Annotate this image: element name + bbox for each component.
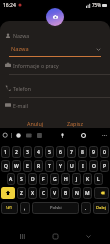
staticText: M [85,190,90,197]
staticText: K [86,176,90,183]
button[interactable] [94,187,109,199]
button[interactable]: Y [56,160,65,172]
button[interactable]: Zapisz [62,118,88,129]
button[interactable]: Settings [80,132,87,139]
staticText: 5 [48,149,51,156]
button[interactable]: Home [49,230,61,242]
button[interactable]: C [39,187,48,199]
button[interactable]: N [72,187,81,199]
button[interactable]: D [28,173,37,185]
button[interactable]: 4 [34,146,43,158]
button[interactable]: T [45,160,54,172]
button[interactable]: Dalej [93,202,109,214]
staticText: 9 [92,149,95,156]
button[interactable]: Add photo [46,8,64,26]
staticText: E-mail [13,102,28,109]
staticText: T [48,163,51,170]
button[interactable] [1,187,15,199]
staticText: L [97,176,100,183]
button[interactable]: K [83,173,92,185]
button[interactable]: R [34,160,43,172]
staticText: 6 [59,149,62,156]
button[interactable]: , [20,202,30,214]
button[interactable]: G [50,173,59,185]
button[interactable]: !#1 [1,202,18,214]
staticText: R [37,163,41,170]
button[interactable]: Voice input [59,132,66,139]
button[interactable]: W [12,160,21,172]
button[interactable]: F [39,173,48,185]
staticText: G [53,176,57,183]
button[interactable]: 0 [100,146,109,158]
staticText: Anuluj [27,120,44,127]
button[interactable]: X [28,187,37,199]
staticText: 7 [70,149,73,156]
staticText: Zapisz [67,120,83,127]
staticText: 16:24 [3,2,16,9]
staticText: U [70,163,74,170]
button[interactable]: Telefon [0,82,110,94]
button[interactable]: 6 [56,146,65,158]
staticText: Y [59,163,62,170]
staticText: Q [4,163,8,170]
button[interactable]: S [17,173,26,185]
staticText: Polski [50,205,62,211]
button[interactable]: Z [17,187,26,199]
staticText: 75% [92,2,101,8]
button[interactable]: 3 [23,146,32,158]
staticText: W [14,163,19,170]
button[interactable]: 5 [45,146,54,158]
staticText: B [64,190,68,197]
staticText: C [42,190,46,197]
button[interactable]: B [61,187,70,199]
staticText: I [82,163,84,170]
staticText: S [20,176,23,183]
button[interactable]: Clipboard [37,132,44,139]
staticText: 8 [81,149,84,156]
button[interactable]: 1 [1,146,10,158]
staticText: Nazwa [11,45,29,53]
button[interactable]: Back [82,230,94,242]
button[interactable]: E [23,160,32,172]
button[interactable]: 2 [12,146,21,158]
button[interactable]: 7 [67,146,76,158]
button[interactable]: Recents [16,230,28,242]
button[interactable]: 8 [78,146,87,158]
button[interactable]: O [89,160,98,172]
staticText: J [76,176,78,183]
button[interactable]: P [100,160,109,172]
button[interactable]: A [7,173,15,185]
staticText: 0 [103,149,106,156]
button[interactable]: 9 [89,146,98,158]
button[interactable]: Q [1,160,10,172]
button[interactable]: H [61,173,70,185]
button[interactable]: J [72,173,81,185]
button[interactable]: L [94,173,103,185]
staticText: Informacje o pracy [13,62,59,69]
staticText: !#1 [6,205,13,211]
button[interactable]: Informacje o pracy [0,59,110,71]
button[interactable]: I [78,160,87,172]
staticText: D [31,176,35,183]
staticText: Z [20,190,23,197]
button[interactable]: More options [101,132,108,139]
staticText: N [75,190,79,197]
button[interactable]: M [83,187,92,199]
button[interactable]: GIF [26,132,33,139]
button[interactable]: Nazwa [0,44,110,57]
staticText: 4 [37,149,40,156]
button[interactable]: Search [2,132,9,139]
button[interactable]: Polski [32,202,79,214]
staticText: . [85,205,87,212]
button[interactable]: V [50,187,59,199]
button[interactable]: Anuluj [22,118,49,129]
button[interactable]: Nazwa [0,30,110,41]
button[interactable]: . [81,202,91,214]
staticText: P [103,163,107,170]
button[interactable]: E-mail [0,99,110,111]
staticText: A [9,176,13,183]
button[interactable]: Stickers [15,132,22,139]
staticText: 1 [4,149,7,156]
button[interactable]: U [67,160,76,172]
staticText: 2 [15,149,18,156]
